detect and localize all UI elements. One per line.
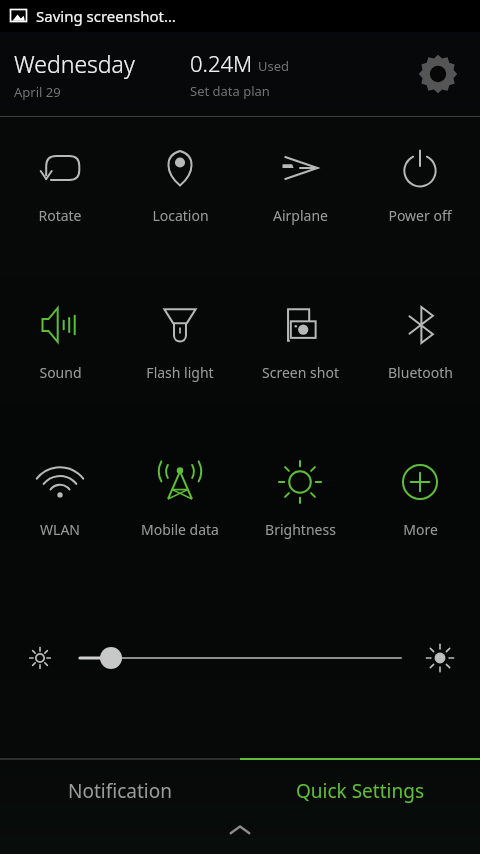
button[interactable]: Brightness slider [0, 642, 480, 674]
button[interactable]: Notification [0, 760, 240, 822]
button[interactable]: Sound [0, 301, 120, 396]
staticText: Bluetooth [388, 363, 453, 382]
button[interactable]: More [360, 458, 480, 553]
staticText: More [403, 520, 438, 539]
button[interactable]: Maximum brightness [425, 643, 455, 673]
staticText: Airplane [273, 206, 328, 225]
staticText: April 29 [14, 83, 61, 101]
staticText: 0.24M [190, 48, 253, 78]
staticText: Sound [39, 363, 82, 382]
staticText: Quick Settings [296, 778, 424, 804]
button[interactable]: Flash light [120, 301, 240, 396]
staticText: Flash light [146, 363, 214, 382]
button[interactable]: Rotate [0, 144, 120, 239]
staticText: Mobile data [141, 520, 219, 539]
staticText: Used [258, 57, 290, 75]
staticText: WLAN [40, 520, 80, 539]
button[interactable]: Location [120, 144, 240, 239]
button[interactable]: Quick Settings [240, 760, 480, 822]
button[interactable]: WLAN [0, 458, 120, 553]
button[interactable]: Settings [415, 51, 461, 97]
button[interactable]: Minimum brightness [25, 643, 55, 673]
staticText: Screen shot [262, 363, 339, 382]
button[interactable]: Collapse panel [0, 822, 480, 854]
staticText: Set data plan [190, 82, 270, 100]
button[interactable]: Mobile data [120, 458, 240, 553]
staticText: Power off [388, 206, 452, 225]
staticText: Saving screenshot… [36, 6, 176, 26]
button[interactable]: Screen shot [240, 301, 360, 396]
staticText: Brightness [265, 520, 336, 539]
button[interactable]: Power off [360, 144, 480, 239]
staticText: Rotate [38, 206, 82, 225]
staticText: Notification [68, 778, 172, 804]
button[interactable]: Bluetooth [360, 301, 480, 396]
staticText: Wednesday [14, 48, 135, 79]
button[interactable]: Airplane [240, 144, 360, 239]
staticText: Location [152, 206, 209, 225]
button[interactable]: Brightness [240, 458, 360, 553]
